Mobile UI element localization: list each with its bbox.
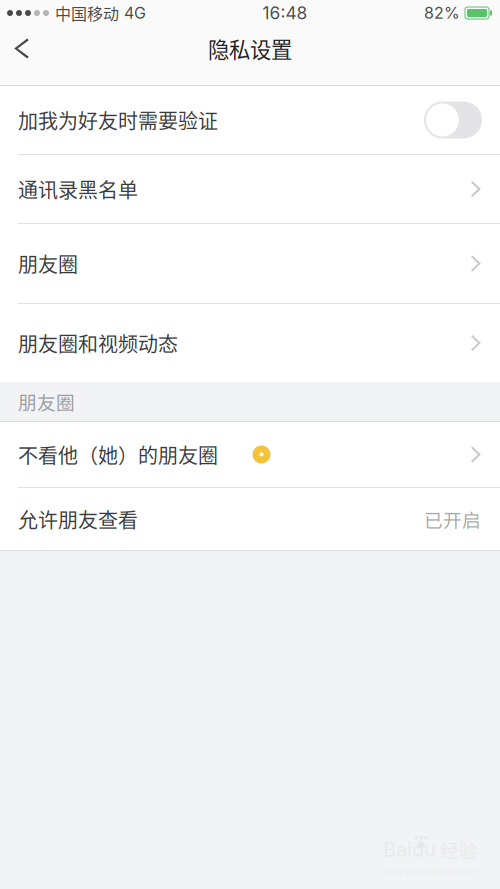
staticText: Baidu xyxy=(383,837,436,862)
button[interactable]: Back xyxy=(0,26,47,71)
staticText: 已开启 xyxy=(424,505,481,532)
staticText: 不看他（她）的朋友圈 xyxy=(18,440,218,469)
staticText: 16:48 xyxy=(262,2,307,23)
staticText: 朋友圈 xyxy=(18,249,78,278)
staticText: 加我为好友时需要验证 xyxy=(18,105,218,134)
staticText: 4G xyxy=(119,3,146,23)
staticText: 允许朋友查看 xyxy=(18,504,138,533)
staticText: 82% xyxy=(424,3,460,23)
staticText: 朋友圈和视频动态 xyxy=(18,328,178,357)
button[interactable]: 通讯录黑名单 xyxy=(0,155,500,223)
button[interactable]: 不看他（她）的朋友圈 xyxy=(0,422,500,487)
button[interactable]: 允许朋友查看 xyxy=(0,488,500,550)
button[interactable]: Require verification when adding me as a… xyxy=(424,101,482,138)
staticText: 隐私设置 xyxy=(208,33,292,64)
staticText: 朋友圈 xyxy=(18,388,75,415)
staticText: 中国移动 xyxy=(55,1,119,25)
button[interactable]: 朋友圈和视频动态 xyxy=(0,304,500,382)
staticText: 通讯录黑名单 xyxy=(18,174,138,203)
button[interactable]: 朋友圈 xyxy=(0,224,500,303)
staticText: 经验 xyxy=(436,836,478,863)
